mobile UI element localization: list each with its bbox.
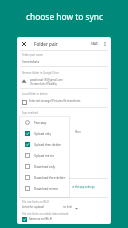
staticText: File size limits on mobile data network <box>22 212 69 216</box>
staticText: pawshovat155@gmail.com <box>30 78 63 82</box>
staticText: Remote folder in Google Drive <box>22 71 59 75</box>
button[interactable]: Download mirror <box>20 183 69 194</box>
button[interactable]: Download then delete <box>20 172 69 183</box>
staticText: Folder pair <box>34 41 58 47</box>
staticText: /Screenshots1Pbaldky <box>30 82 57 86</box>
staticText: no limit <box>63 205 73 209</box>
button[interactable]: Close <box>20 40 28 48</box>
button[interactable]: Upload then delete <box>20 139 69 150</box>
button[interactable]: Download only <box>20 161 69 172</box>
staticText: Download then delete <box>34 176 66 180</box>
staticText: Upload then delete <box>34 143 61 147</box>
button[interactable]: SAVE <box>91 42 99 46</box>
button[interactable]: Two-way <box>20 117 69 128</box>
staticText: Download mirror <box>34 187 59 191</box>
staticText: Limit for upload <box>22 205 44 209</box>
staticText: Upload mirror <box>34 154 54 158</box>
staticText: Internal storage/Pictures/Screenshots <box>29 99 81 103</box>
staticText: Sync method <box>22 111 38 115</box>
button[interactable]: Upload mirror <box>20 150 69 161</box>
staticText: SAVE <box>91 42 99 46</box>
staticText: filter <box>75 130 81 134</box>
staticText: Folder pair name <box>22 53 43 57</box>
staticText: Screenshots <box>22 60 40 64</box>
staticText: File size limits on Wi-Fi <box>22 200 50 204</box>
staticText: in the app settings <box>72 185 95 189</box>
staticText: Upload only <box>34 132 51 136</box>
button[interactable]: More options <box>101 40 109 48</box>
staticText: Same as on Wi-Fi <box>29 217 52 221</box>
button[interactable]: Upload only <box>20 128 69 139</box>
staticText: Two-way <box>34 121 47 125</box>
staticText: Download only <box>34 165 56 169</box>
staticText: choose how to sync <box>26 11 103 22</box>
staticText: Local folder in device <box>22 92 48 96</box>
